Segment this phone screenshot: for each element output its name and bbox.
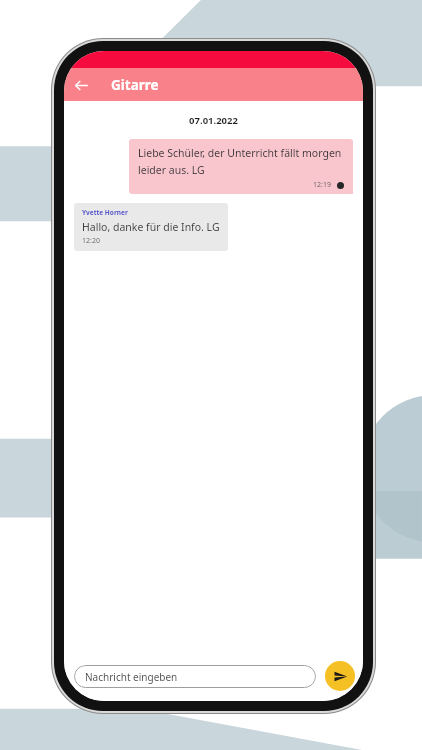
staticText: Nachricht eingeben <box>85 670 178 684</box>
button[interactable]: Back <box>67 71 95 99</box>
button[interactable]: Yvette Horner <box>74 203 228 251</box>
button[interactable]: Liebe Schüler, der Unterricht fällt morg… <box>129 139 353 194</box>
staticText: 07.01.2022 <box>64 114 363 127</box>
staticText: Hallo, danke für die Info. LG <box>82 220 220 234</box>
staticText: 12:20 <box>82 236 100 246</box>
staticText: Gitarre <box>111 76 159 94</box>
button[interactable]: Senden <box>325 661 355 691</box>
staticText: Yvette Horner <box>82 208 128 217</box>
staticText: Liebe Schüler, der Unterricht fällt morg… <box>138 146 344 177</box>
button[interactable]: Nachricht eingeben <box>74 665 316 688</box>
staticText: 12:19 <box>313 180 331 190</box>
